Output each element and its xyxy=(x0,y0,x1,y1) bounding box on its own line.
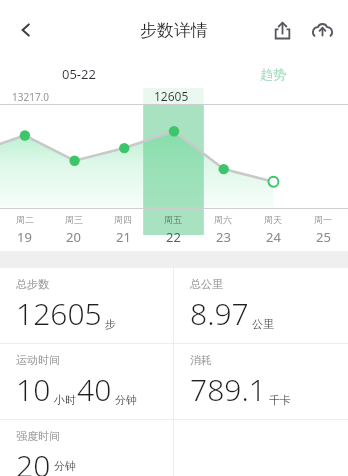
button[interactable]: 趋势 xyxy=(260,66,286,82)
staticText: 13217.0 xyxy=(12,90,49,104)
button[interactable]: 周二 xyxy=(0,209,49,251)
button[interactable]: Back xyxy=(4,8,48,52)
button[interactable]: Upload to cloud xyxy=(302,10,342,50)
staticText: 小时 xyxy=(54,393,76,407)
staticText: 步 xyxy=(105,317,116,331)
staticText: 24 xyxy=(266,228,281,246)
staticText: 周四 xyxy=(114,214,132,225)
button[interactable]: 周五 xyxy=(148,209,198,251)
button[interactable]: 消耗 xyxy=(174,344,348,419)
staticText: 25 xyxy=(316,228,331,246)
button[interactable]: 强度时间 xyxy=(0,420,173,476)
button[interactable]: 总公里 xyxy=(174,268,348,343)
staticText: 运动时间 xyxy=(16,353,60,367)
staticText: 23 xyxy=(216,228,231,246)
staticText: 周天 xyxy=(264,214,282,225)
staticText: 周二 xyxy=(16,214,34,225)
staticText: 周五 xyxy=(164,214,182,225)
button[interactable]: 总步数 xyxy=(0,268,173,343)
staticText: 公里 xyxy=(252,317,274,331)
button[interactable]: 周三 xyxy=(49,209,98,251)
staticText: 05-22 xyxy=(62,65,96,83)
staticText: 分钟 xyxy=(115,393,137,407)
staticText: 消耗 xyxy=(190,353,212,367)
staticText: 总公里 xyxy=(190,277,223,291)
button[interactable]: 周四 xyxy=(98,209,148,251)
staticText: 789.1 xyxy=(190,369,266,410)
button[interactable]: 运动时间 xyxy=(0,344,173,419)
staticText: 21 xyxy=(116,228,131,246)
button[interactable]: Share xyxy=(262,10,302,50)
staticText: 8.97 xyxy=(190,293,249,334)
staticText: 强度时间 xyxy=(16,429,60,443)
staticText: 分钟 xyxy=(54,459,76,473)
staticText: 周一 xyxy=(314,214,332,225)
staticText: 千卡 xyxy=(269,393,291,407)
staticText: 10 xyxy=(16,369,51,410)
staticText: 22 xyxy=(166,228,181,246)
staticText: 40 xyxy=(77,369,112,410)
button[interactable]: 周天 xyxy=(248,209,298,251)
staticText: 20 xyxy=(16,445,51,476)
staticText: 周六 xyxy=(214,214,232,225)
staticText: 步数详情 xyxy=(140,20,208,41)
staticText: 12605 xyxy=(154,88,189,104)
button[interactable]: 周六 xyxy=(198,209,248,251)
staticText: 19 xyxy=(17,228,32,246)
button[interactable]: 周一 xyxy=(298,209,348,251)
staticText: 20 xyxy=(66,228,81,246)
staticText: 总步数 xyxy=(16,277,49,291)
staticText: 周三 xyxy=(65,214,83,225)
staticText: 12605 xyxy=(16,293,102,334)
